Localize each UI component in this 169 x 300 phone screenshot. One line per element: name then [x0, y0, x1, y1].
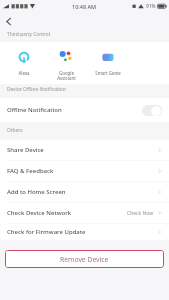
staticText: 10:48 AM: [72, 3, 97, 10]
button[interactable]: Share Device: [0, 140, 169, 160]
button[interactable]: Check Device Network: [0, 203, 169, 223]
staticText: Check for Firmware Update: [7, 228, 86, 236]
button[interactable]: Remove Device: [5, 250, 164, 268]
staticText: Check Device Network: [7, 209, 72, 217]
button[interactable]: Back: [0, 14, 18, 29]
staticText: Others: [7, 127, 23, 134]
staticText: Offline Notification: [7, 106, 62, 114]
staticText: Remove Device: [60, 255, 109, 264]
staticText: Third-party Control: [7, 31, 50, 38]
staticText: Google Assistant: [57, 70, 76, 82]
button[interactable]: FAQ & Feedback: [0, 161, 169, 181]
button[interactable]: Google Assistant: [45, 42, 87, 82]
button[interactable]: Alexa: [3, 42, 45, 76]
staticText: 91%: [146, 3, 156, 10]
staticText: Smart Genie: [95, 70, 121, 76]
button[interactable]: Add to Home Screen: [0, 182, 169, 202]
button[interactable]: Offline Notification: [0, 98, 169, 122]
staticText: FAQ & Feedback: [7, 167, 54, 175]
staticText: Share Device: [7, 146, 44, 154]
staticText: Device Offline Notification: [7, 86, 66, 93]
staticText: Add to Home Screen: [7, 188, 66, 196]
button[interactable]: Check for Firmware Update: [0, 224, 169, 240]
staticText: Check Now: [127, 210, 154, 217]
button[interactable]: Smart Genie: [87, 42, 129, 76]
staticText: Alexa: [18, 70, 30, 76]
